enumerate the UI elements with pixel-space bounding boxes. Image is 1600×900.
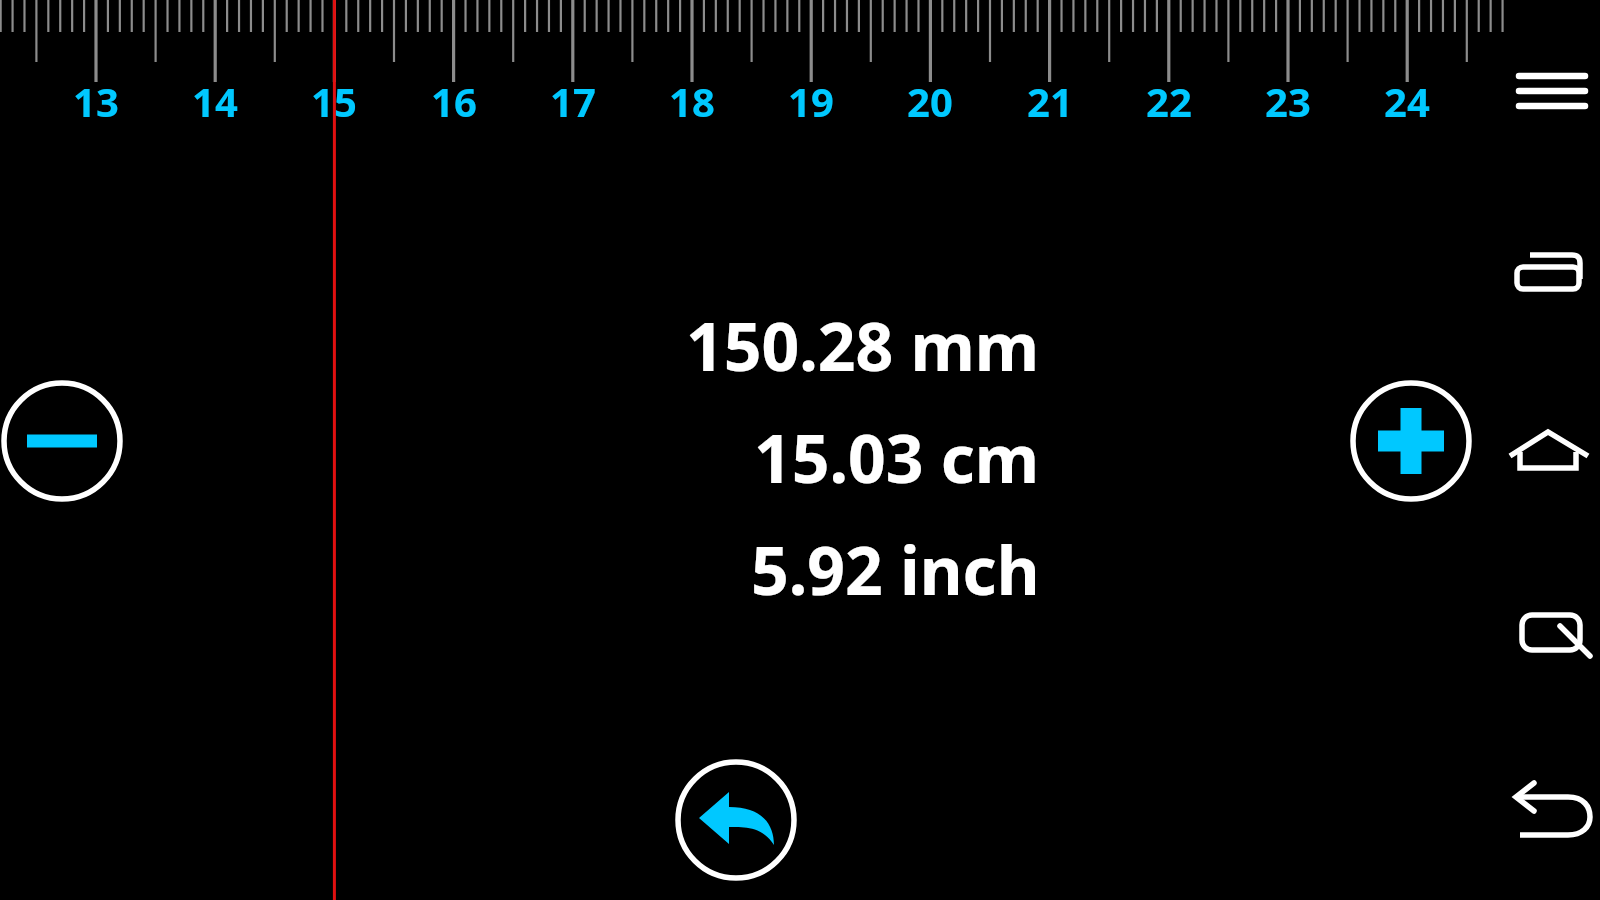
button[interactable]: Increase xyxy=(1349,379,1473,503)
staticText: 23 xyxy=(1265,74,1311,122)
button[interactable]: Undo xyxy=(674,758,798,882)
button[interactable]: Home xyxy=(1498,412,1598,480)
staticText: 22 xyxy=(1146,74,1192,122)
staticText: 14 xyxy=(192,74,238,122)
button[interactable]: Menu xyxy=(1505,58,1600,124)
button[interactable]: Screenshot xyxy=(1498,588,1598,660)
staticText: 5.92 inch xyxy=(751,524,1040,600)
staticText: 24 xyxy=(1384,74,1430,122)
staticText: 19 xyxy=(788,74,834,122)
staticText: 20 xyxy=(907,74,953,122)
button[interactable]: Decrease xyxy=(0,379,124,503)
staticText: 150.28 mm xyxy=(686,300,1040,390)
staticText: 16 xyxy=(431,74,477,122)
staticText: 17 xyxy=(550,74,596,122)
staticText: 15.03 cm xyxy=(754,412,1040,502)
staticText: 13 xyxy=(73,74,119,122)
staticText: 18 xyxy=(669,74,715,122)
staticText: 15 xyxy=(311,74,357,122)
button[interactable]: Recent apps xyxy=(1498,233,1598,305)
button[interactable]: Back xyxy=(1498,765,1598,845)
staticText: 21 xyxy=(1027,74,1073,122)
